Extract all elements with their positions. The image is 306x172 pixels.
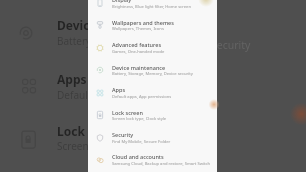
staticText: Device maintenance xyxy=(57,17,179,33)
staticText: Security xyxy=(112,131,134,138)
staticText: Games, One-handed mode xyxy=(112,49,165,55)
button[interactable] xyxy=(0,113,88,157)
staticText: Battery, Storage, Memory, Device securit… xyxy=(112,71,193,77)
staticText: Lock screen xyxy=(57,123,128,139)
button[interactable] xyxy=(88,15,217,37)
button[interactable] xyxy=(88,0,217,15)
button[interactable] xyxy=(88,105,217,127)
staticText: Apps xyxy=(57,71,87,87)
staticText: Apps xyxy=(112,86,126,93)
button[interactable] xyxy=(0,7,88,51)
staticText: Screen lock type, Clock style xyxy=(57,139,187,153)
other: Wallpapers and themes xyxy=(96,21,104,29)
staticText: Brightness, Blue light filter, Home scre… xyxy=(112,4,191,10)
staticText: Find My Mobile, Secure Folder xyxy=(112,139,171,145)
button[interactable] xyxy=(88,127,217,149)
other: Display xyxy=(96,0,104,7)
staticText: Wallpapers and themes xyxy=(112,19,174,26)
other: Device maintenance xyxy=(96,66,104,74)
staticText: Security xyxy=(211,38,251,52)
button[interactable] xyxy=(88,60,217,82)
staticText: Default apps, App permissions xyxy=(57,88,187,102)
other: Security xyxy=(96,134,104,142)
staticText: Default apps, App permissions xyxy=(112,94,172,100)
other: Apps xyxy=(96,89,104,97)
staticText: Samsung Cloud, Backup and restore, Smart… xyxy=(112,161,211,167)
staticText: Device maintenance xyxy=(112,64,166,71)
staticText: Wallpapers, Themes, Icons xyxy=(112,26,164,32)
staticText: Battery, Storage, Memory, Device securit… xyxy=(57,34,187,48)
other: Cloud and accounts xyxy=(96,156,104,164)
staticText: Cloud and accounts xyxy=(112,153,164,160)
other: Advanced features xyxy=(96,44,104,52)
button[interactable] xyxy=(88,37,217,59)
other: Lock screen xyxy=(96,111,104,119)
button[interactable] xyxy=(88,82,217,104)
staticText: Screen lock type, Clock style xyxy=(112,116,167,122)
staticText: Lock screen xyxy=(112,109,143,116)
staticText: Display xyxy=(112,0,132,3)
button[interactable] xyxy=(0,61,88,105)
button[interactable] xyxy=(88,150,217,172)
staticText: Advanced features xyxy=(112,41,162,48)
